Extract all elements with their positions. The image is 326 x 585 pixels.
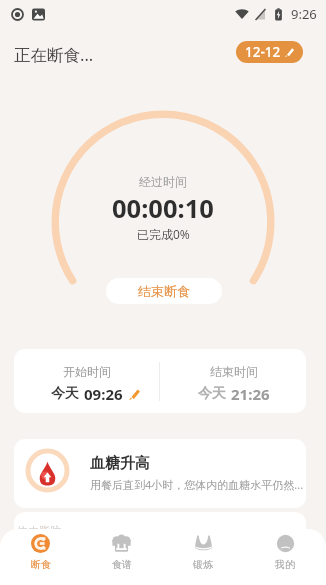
button[interactable]: 食谱 (81, 529, 162, 585)
button[interactable]: 锻炼 (162, 529, 244, 585)
staticText: 9:26 (291, 5, 317, 23)
staticText: 开始时间 (63, 364, 111, 379)
staticText: 正在断食... (14, 43, 94, 66)
staticText: 今天 (198, 385, 226, 403)
staticText: 09:26 (84, 384, 123, 404)
staticText: 经过时间 (139, 174, 187, 189)
staticText: 已完成0% (137, 226, 190, 242)
button[interactable]: 断食 (0, 529, 81, 585)
button[interactable]: 开始时间 (14, 352, 159, 413)
button[interactable]: 体内脂肪... (14, 512, 306, 576)
staticText: 21:26 (231, 384, 270, 404)
staticText: 血糖升高 (90, 454, 150, 473)
staticText: 锻炼 (193, 558, 213, 571)
button[interactable]: Edit start time (128, 388, 141, 401)
button[interactable]: 我的 (244, 529, 326, 585)
button[interactable]: 结束断食 (106, 278, 222, 304)
button[interactable]: 12-12 (236, 41, 303, 63)
staticText: 食谱 (112, 558, 132, 571)
staticText: 今天 (51, 385, 79, 403)
staticText: 我的 (275, 558, 295, 571)
staticText: 用餐后直到4小时，您体内的血糖水平仍然... (90, 477, 304, 492)
staticText: 结束时间 (210, 364, 258, 379)
staticText: 00:00:10 (112, 191, 214, 226)
staticText: 结束断食 (138, 283, 190, 299)
staticText: 体内脂肪... (17, 523, 70, 538)
button[interactable]: 血糖升高 (14, 439, 306, 508)
button[interactable]: 结束时间 (162, 352, 306, 413)
staticText: 12-12 (245, 43, 281, 61)
staticText: 断食 (31, 558, 51, 571)
